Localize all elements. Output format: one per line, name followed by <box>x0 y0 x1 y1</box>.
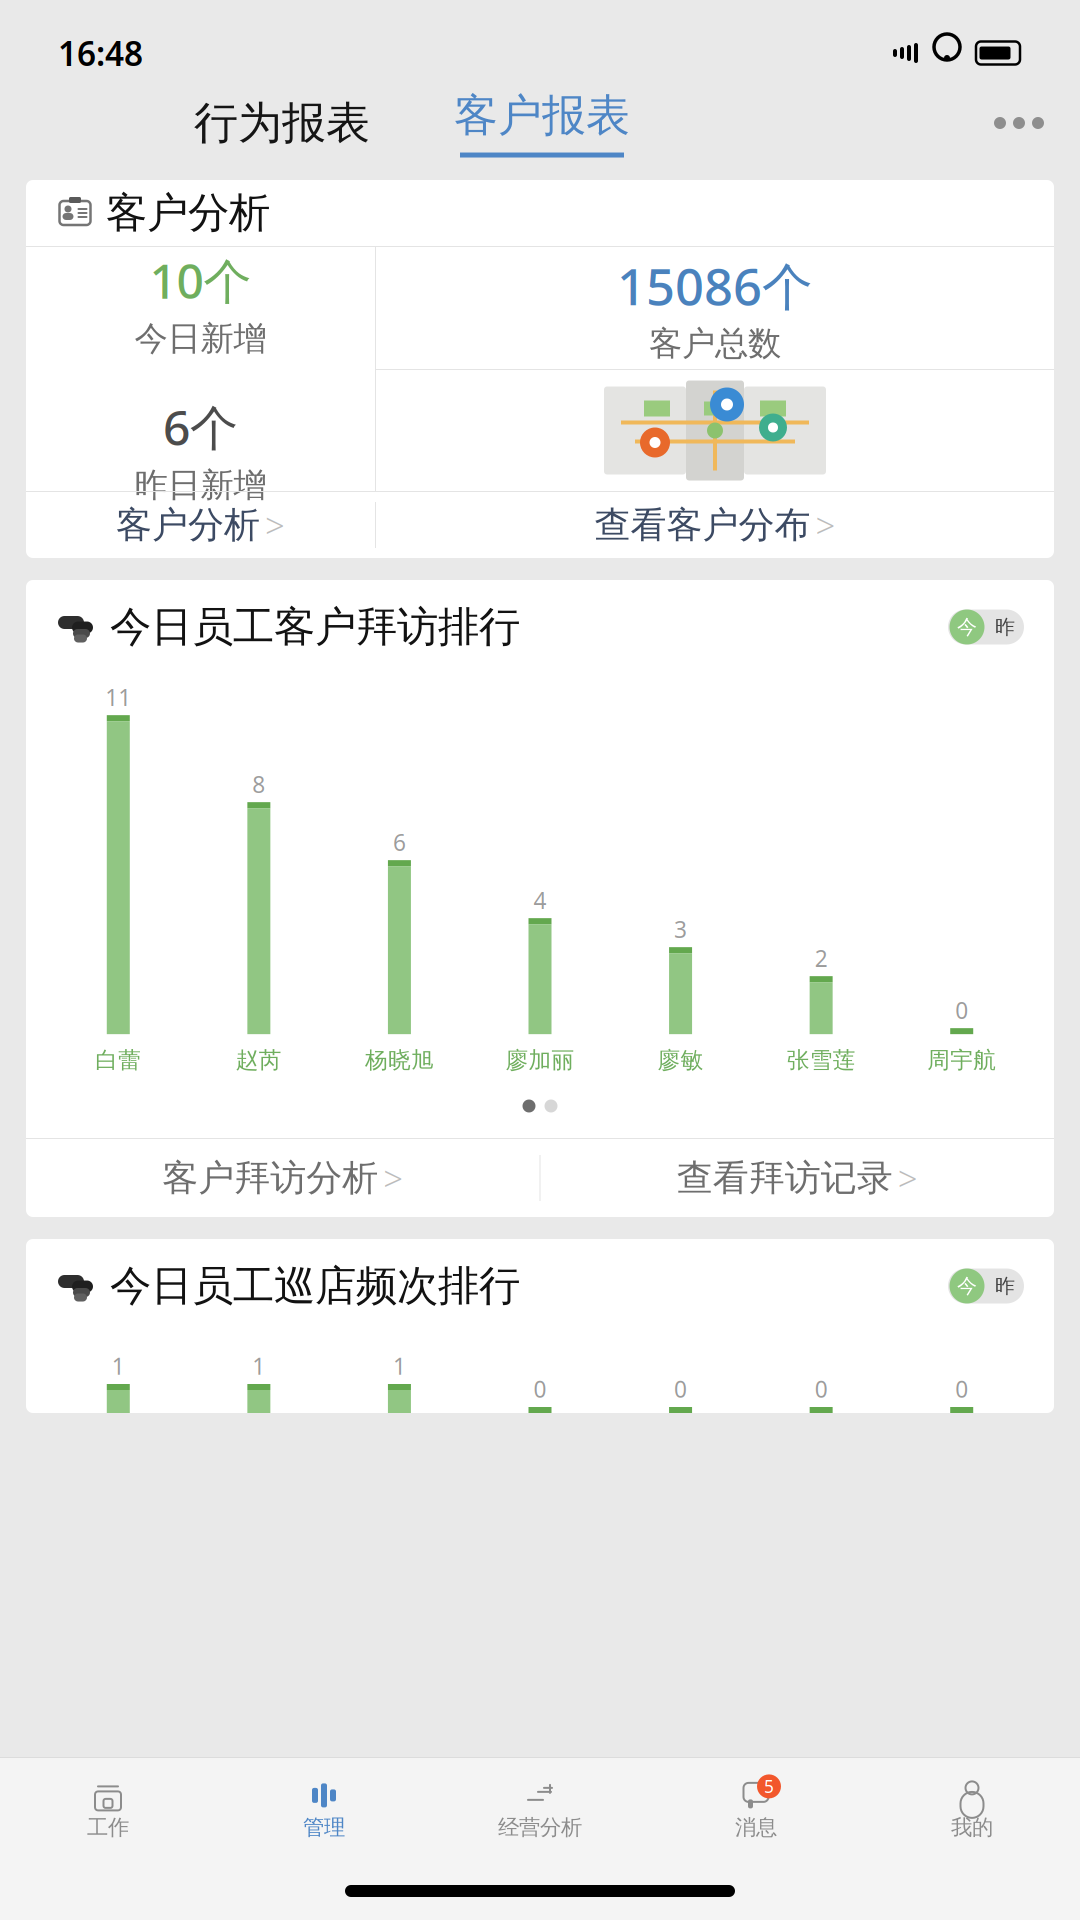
staticText: 0 <box>674 1374 687 1404</box>
staticText: 客户分析 <box>116 503 260 547</box>
staticText: 今 <box>957 615 977 639</box>
staticText: 8 <box>252 769 265 799</box>
button[interactable]: 工作 <box>0 1778 216 1842</box>
staticText: 今 <box>957 1274 977 1298</box>
staticText: 4 <box>533 885 546 915</box>
staticText: 今日员工巡店频次排行 <box>110 1261 520 1311</box>
staticText: 昨日新增 <box>134 465 266 506</box>
staticText: 行为报表 <box>194 96 370 150</box>
staticText: 周宇航 <box>927 1046 996 1074</box>
staticText: 6个 <box>163 395 238 459</box>
staticText: 管理 <box>303 1814 345 1841</box>
staticText: 查看拜访记录 <box>677 1156 893 1200</box>
staticText: 张雪莲 <box>787 1046 856 1074</box>
staticText: > <box>815 502 835 548</box>
staticText: 白蕾 <box>95 1046 141 1074</box>
staticText: 廖敏 <box>658 1046 704 1074</box>
staticText: 昨 <box>995 615 1015 639</box>
staticText: 0 <box>955 995 968 1025</box>
button[interactable]: 5 <box>648 1778 864 1842</box>
staticText: 1 <box>393 1351 406 1381</box>
staticText: 查看客户分布 <box>594 503 810 547</box>
button[interactable]: 切换今天或昨天 <box>948 609 1024 644</box>
button[interactable]: 客户报表 <box>454 88 630 158</box>
button[interactable]: 查看拜访记录 <box>540 1155 1054 1201</box>
staticText: 0 <box>815 1374 828 1404</box>
staticText: 16:48 <box>58 31 143 75</box>
staticText: 6 <box>393 827 406 857</box>
button[interactable]: 管理 <box>216 1778 432 1842</box>
button[interactable]: 查看客户分布 <box>376 502 1054 548</box>
staticText: 3 <box>674 914 687 944</box>
staticText: 客户分析 <box>106 188 270 238</box>
staticText: 1 <box>252 1351 265 1381</box>
staticText: 杨晓旭 <box>365 1046 434 1074</box>
staticText: > <box>265 502 285 548</box>
button[interactable]: 切换今天或昨天 <box>948 1268 1024 1303</box>
staticText: 经营分析 <box>498 1814 582 1841</box>
staticText: 15086个 <box>617 252 813 319</box>
staticText: 工作 <box>87 1814 129 1841</box>
staticText: 客户总数 <box>649 323 781 364</box>
button[interactable]: 客户拜访分析 <box>26 1155 539 1201</box>
staticText: 今日新增 <box>134 318 266 359</box>
staticText: 客户拜访分析 <box>162 1156 378 1200</box>
staticText: 0 <box>955 1374 968 1404</box>
staticText: 客户报表 <box>454 88 630 142</box>
staticText: 0 <box>533 1374 546 1404</box>
staticText: > <box>898 1155 918 1201</box>
staticText: 10个 <box>149 248 251 312</box>
button[interactable]: 行为报表 <box>186 88 378 158</box>
button[interactable]: 经营分析 <box>432 1778 648 1842</box>
button[interactable]: 更多 <box>974 88 1064 158</box>
staticText: 今日员工客户拜访排行 <box>110 602 520 652</box>
staticText: 1 <box>112 1351 125 1381</box>
staticText: 5 <box>764 1775 774 1798</box>
staticText: 廖加丽 <box>505 1046 574 1074</box>
staticText: 我的 <box>951 1814 993 1841</box>
button[interactable]: 客户分析 <box>26 502 375 548</box>
staticText: 11 <box>105 682 131 712</box>
staticText: 消息 <box>735 1814 777 1841</box>
button[interactable]: 我的 <box>864 1778 1080 1842</box>
staticText: 昨 <box>995 1274 1015 1298</box>
staticText: > <box>383 1155 403 1201</box>
staticText: 赵芮 <box>236 1046 282 1074</box>
staticText: 2 <box>815 943 828 973</box>
